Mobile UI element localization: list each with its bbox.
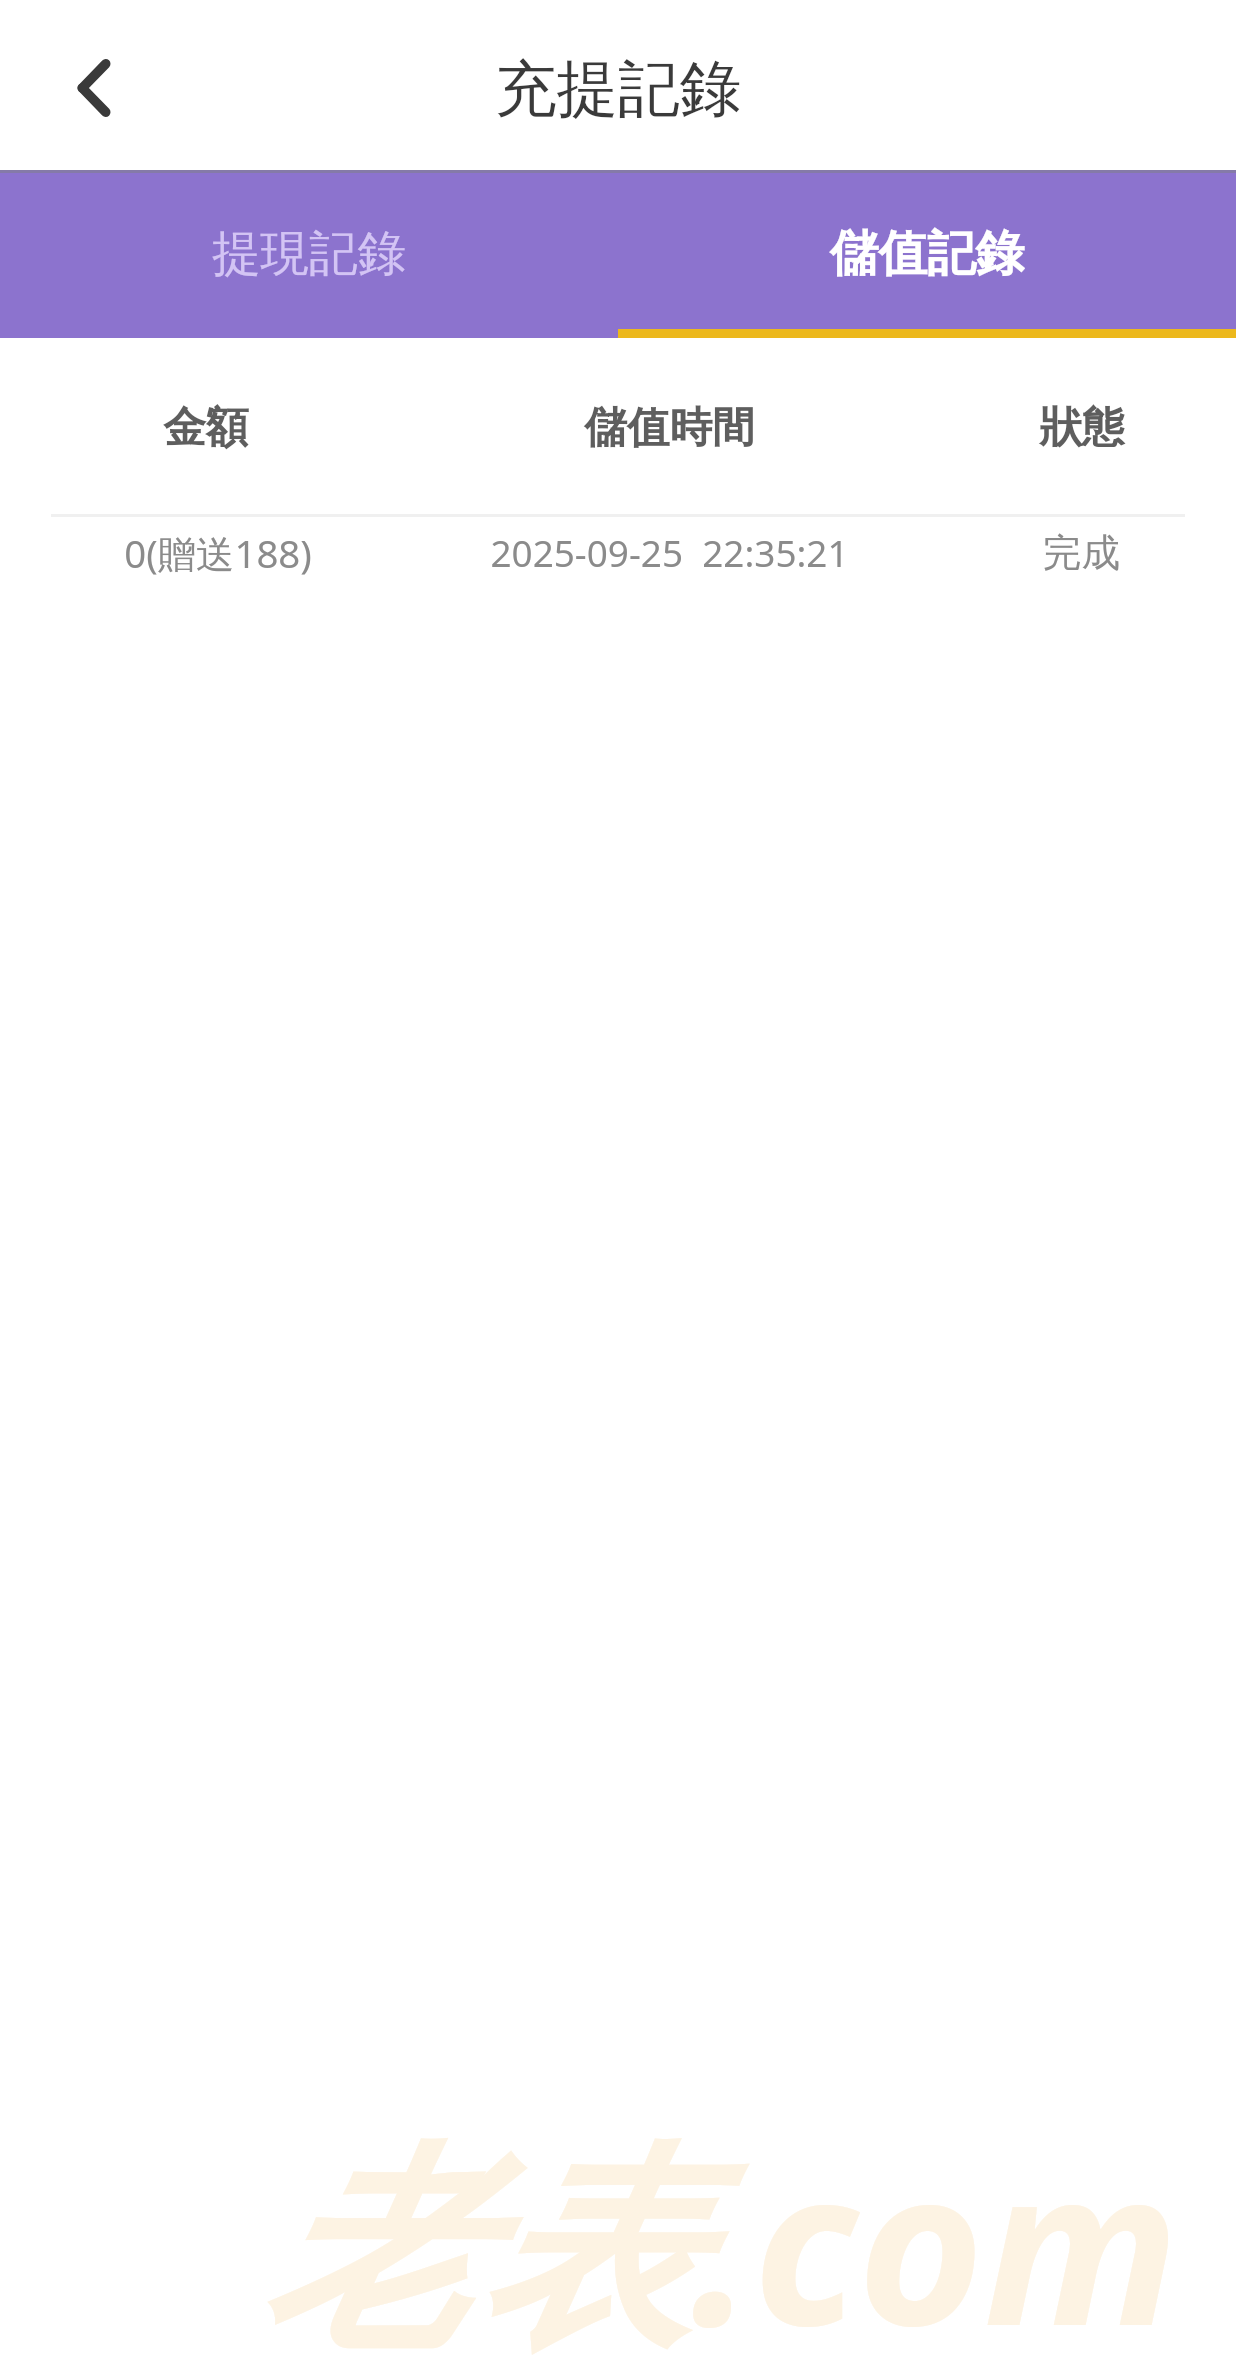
- staticText: 儲值記錄: [830, 223, 1025, 284]
- staticText: 完成: [1043, 529, 1120, 577]
- staticText: 0(贈送188): [124, 527, 312, 579]
- button[interactable]: 儲值記錄: [618, 170, 1236, 338]
- button[interactable]: Back: [28, 22, 160, 154]
- staticText: 提現記錄: [212, 223, 407, 284]
- staticText: 2025-09-25 22:35:21: [490, 528, 849, 578]
- button[interactable]: 0(贈送188): [0, 517, 1236, 589]
- button[interactable]: 提現記錄: [0, 170, 618, 338]
- staticText: 狀態: [1039, 401, 1125, 455]
- staticText: 金額: [163, 401, 249, 455]
- staticText: 充提記錄: [495, 51, 741, 128]
- staticText: 老表.com: [260, 2094, 1180, 2369]
- staticText: 儲值時間: [584, 401, 755, 455]
